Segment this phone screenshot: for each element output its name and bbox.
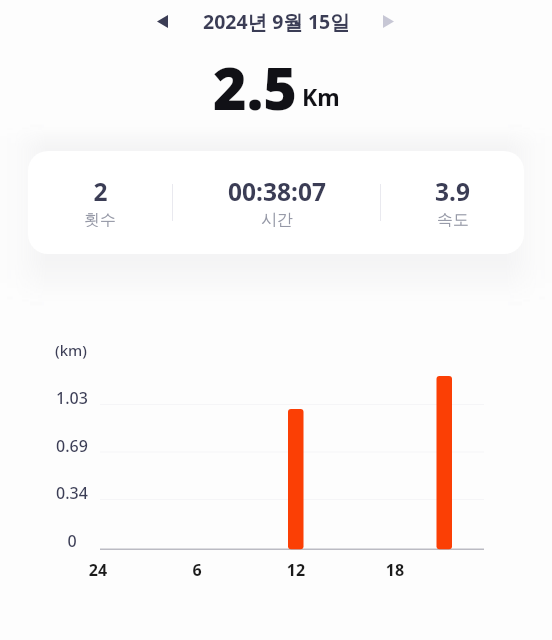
button[interactable]: 00:38:07 [173,151,380,254]
staticText: 00:38:07 [228,175,326,208]
button[interactable]: Previous day [144,3,181,40]
staticText: 24 [73,559,123,581]
staticText: 1.03 [22,387,122,409]
staticText: 2 [93,175,108,208]
staticText: 횟수 [84,210,116,230]
staticText: 12 [271,559,321,581]
button[interactable]: 3.9 [381,151,524,254]
staticText: 2024년 9월 15일 [203,8,350,35]
button[interactable]: Next day [370,3,407,40]
staticText: 0.69 [22,435,122,457]
button[interactable]: 2 [28,151,172,254]
staticText: 0 [22,530,122,552]
staticText: 3.9 [435,175,470,208]
staticText: 시간 [261,210,293,230]
staticText: 18 [370,559,420,581]
staticText: Km [302,81,340,112]
staticText: 6 [172,559,222,581]
staticText: 속도 [437,210,469,230]
staticText: 0.34 [22,482,122,504]
staticText: 2.5 [213,49,298,127]
staticText: (km) [55,340,87,360]
